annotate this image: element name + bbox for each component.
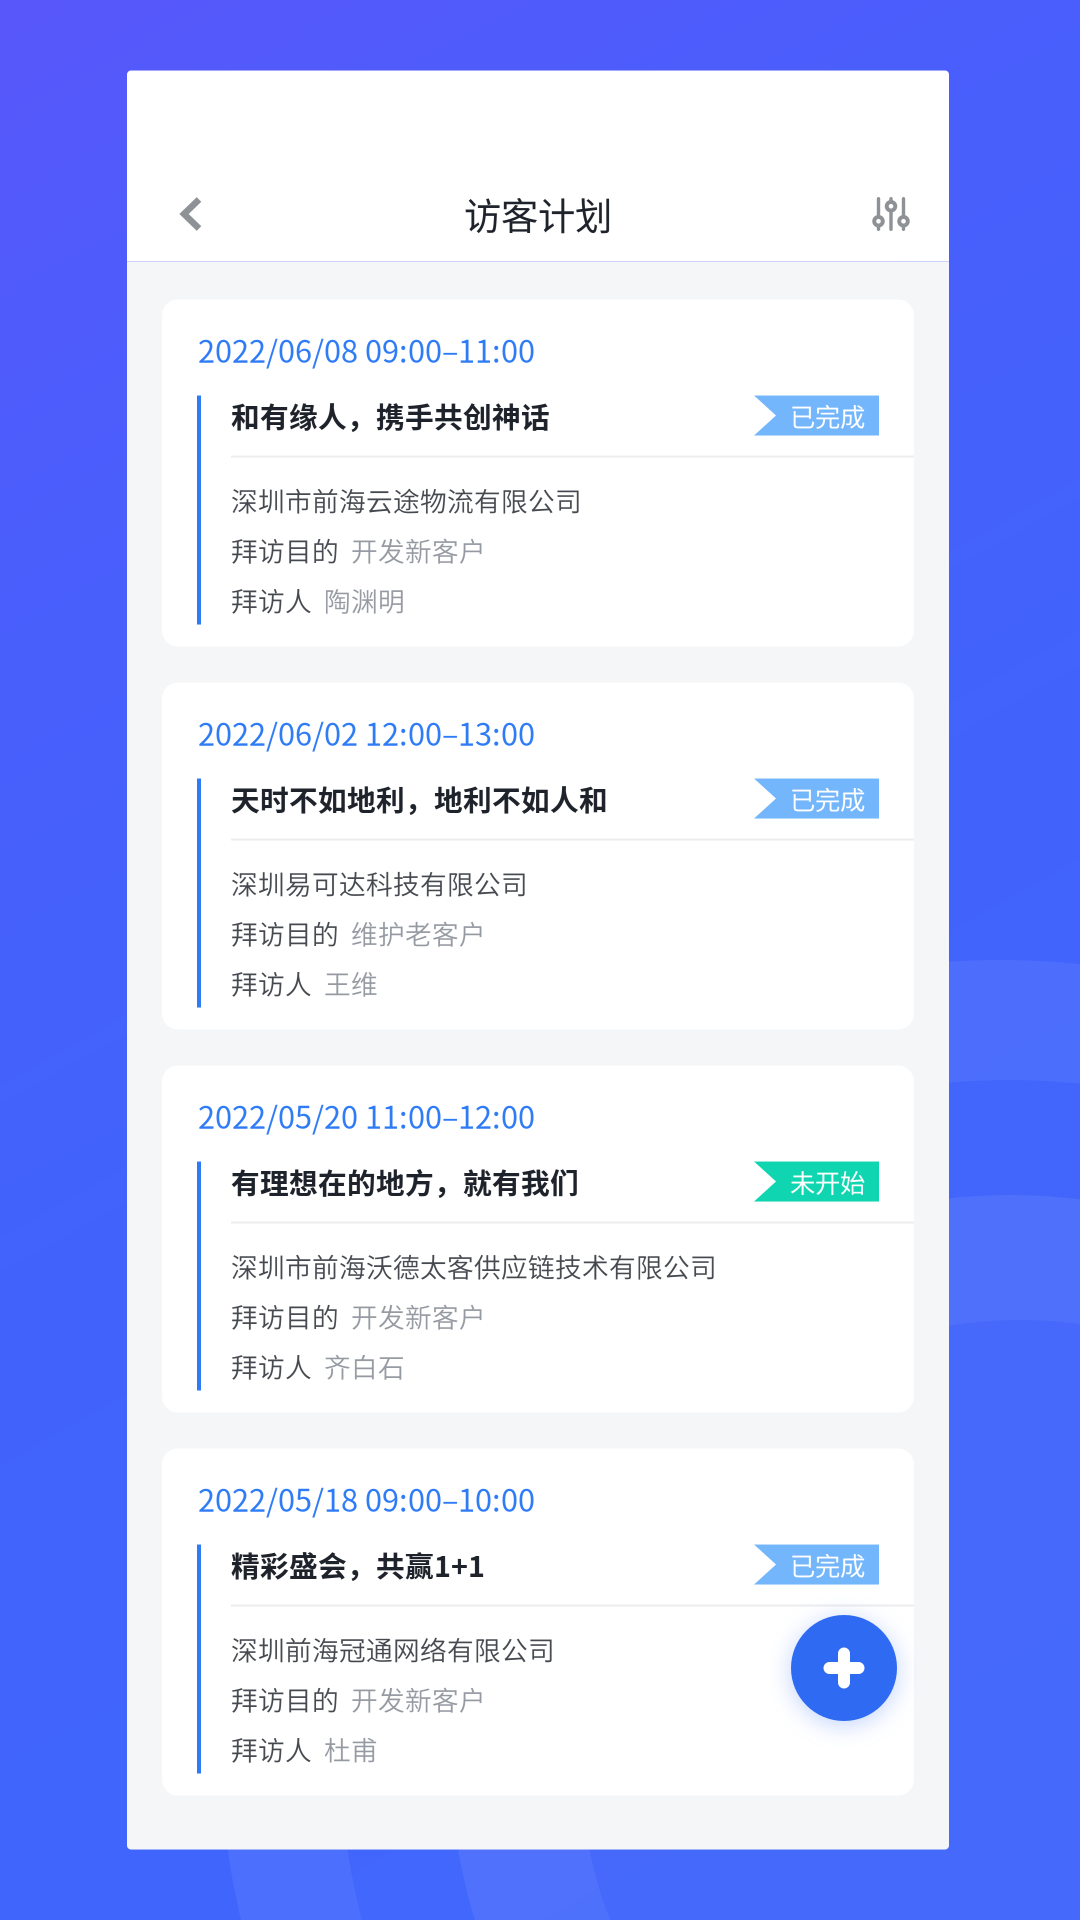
staticText: 访客计划 <box>464 187 612 241</box>
button[interactable]: 2022/06/08 09:00–11:00 <box>162 299 914 646</box>
staticText: 天时不如地利，地利不如人和 <box>231 778 608 819</box>
staticText: 2022/05/18 09:00–10:00 <box>198 1476 535 1521</box>
staticText: 深圳易可达科技有限公司 <box>231 863 528 902</box>
button[interactable]: Back <box>127 168 255 259</box>
staticText: 拜访人 <box>231 580 312 619</box>
button[interactable]: Filter <box>818 169 949 259</box>
staticText: 开发新客户 <box>339 530 486 569</box>
staticText: 王维 <box>312 963 378 1002</box>
staticText: 深圳前海冠通网络有限公司 <box>231 1629 555 1668</box>
button[interactable]: Add visit plan <box>791 1615 897 1721</box>
staticText: 陶渊明 <box>312 580 405 619</box>
staticText: 开发新客户 <box>339 1296 486 1335</box>
button[interactable]: 2022/05/18 09:00–10:00 <box>162 1448 914 1795</box>
staticText: 2022/06/08 09:00–11:00 <box>198 327 535 372</box>
staticText: 拜访人 <box>231 963 312 1002</box>
staticText: 深圳市前海沃德太客供应链技术有限公司 <box>231 1246 717 1285</box>
staticText: 和有缘人，携手共创神话 <box>231 395 550 436</box>
staticText: 已完成 <box>790 1546 865 1583</box>
staticText: 拜访目的 <box>231 530 339 569</box>
staticText: 开发新客户 <box>339 1679 486 1718</box>
staticText: 2022/05/20 11:00–12:00 <box>198 1093 535 1138</box>
staticText: 深圳市前海云途物流有限公司 <box>231 480 582 519</box>
button[interactable]: 2022/06/02 12:00–13:00 <box>162 682 914 1029</box>
button[interactable]: 2022/05/20 11:00–12:00 <box>162 1065 914 1412</box>
staticText: 拜访人 <box>231 1729 312 1768</box>
staticText: 拜访目的 <box>231 1296 339 1335</box>
staticText: 2022/06/02 12:00–13:00 <box>198 710 535 755</box>
staticText: 拜访人 <box>231 1346 312 1385</box>
staticText: 有理想在的地方，就有我们 <box>231 1161 579 1202</box>
staticText: 已完成 <box>790 780 865 817</box>
staticText: 拜访目的 <box>231 913 339 952</box>
staticText: 已完成 <box>790 397 865 434</box>
staticText: 精彩盛会，共赢1+1 <box>231 1544 485 1585</box>
staticText: 齐白石 <box>312 1346 405 1385</box>
staticText: 未开始 <box>790 1163 865 1200</box>
staticText: 维护老客户 <box>339 913 486 952</box>
staticText: 拜访目的 <box>231 1679 339 1718</box>
staticText: 杜甫 <box>312 1729 378 1768</box>
